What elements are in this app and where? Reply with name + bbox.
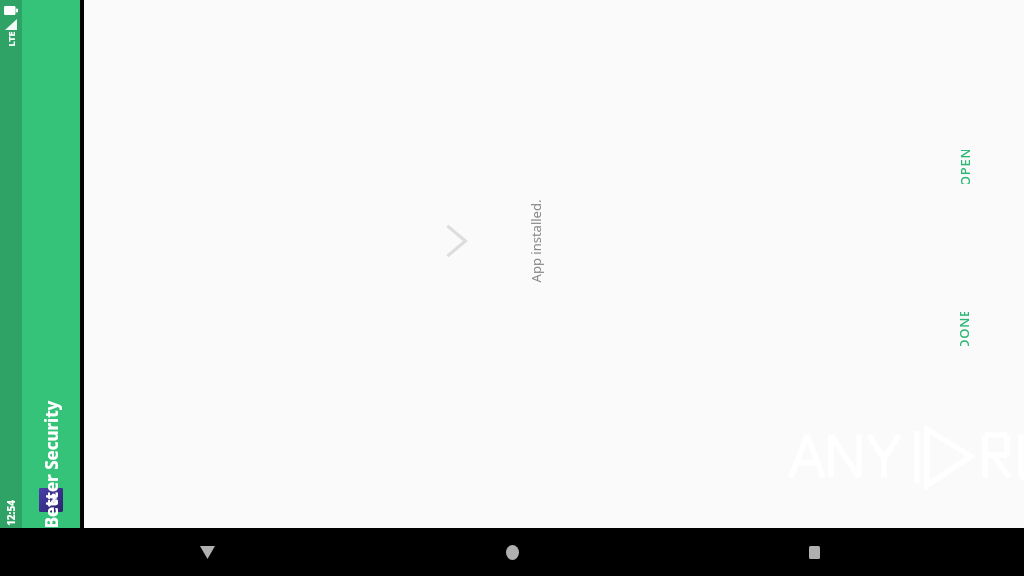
button[interactable]: OPEN [939,150,990,184]
button[interactable]: Home [488,528,536,576]
staticText: App installed. [526,199,544,282]
staticText: LTE [5,31,17,47]
button[interactable]: App icon [22,0,80,528]
staticText: 12:54 [4,500,18,526]
button[interactable]: Back [183,528,231,576]
staticText: Better Security [39,400,62,528]
button[interactable]: DONE [937,312,990,346]
other: App icon [39,488,63,512]
button[interactable]: Recents [790,528,838,576]
staticText: OPEN [955,150,973,184]
staticText: DONE [954,312,972,346]
